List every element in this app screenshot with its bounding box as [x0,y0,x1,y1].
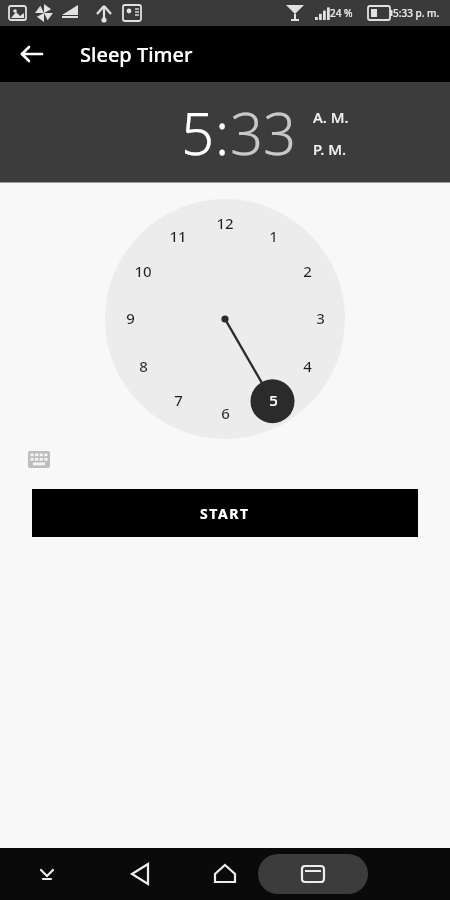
button[interactable]: Switch to text input [22,445,58,475]
staticText: START [200,504,250,523]
staticText: 1 [269,226,278,246]
button[interactable]: 1 [258,226,288,246]
button[interactable]: Back [117,850,165,898]
button[interactable]: 7 [163,390,193,410]
staticText: 8 [139,356,148,376]
button[interactable]: Home [201,850,249,898]
staticText: 24 % [330,6,353,20]
staticText: 33 [230,93,297,172]
button[interactable]: 33 [230,93,297,172]
staticText: Sleep Timer [80,41,193,68]
staticText: 2 [303,261,312,281]
staticText: 7 [174,390,183,410]
staticText: 6 [221,403,230,423]
button[interactable]: 5 [181,93,215,172]
button[interactable]: 3 [305,308,335,328]
button[interactable]: 6 [210,403,240,423]
staticText: A. M. [313,107,349,127]
button[interactable]: 4 [292,356,322,376]
staticText: 12 [216,213,234,233]
staticText: 4 [303,356,312,376]
button[interactable]: START [32,489,418,537]
staticText: P. M. [313,139,347,159]
staticText: 5 [181,93,215,172]
button[interactable]: P. M. [313,137,347,161]
staticText: 10 [134,261,152,281]
button[interactable]: Recents [258,854,368,894]
staticText: 11 [169,226,187,246]
button[interactable]: 8 [128,356,158,376]
button[interactable]: 2 [292,261,322,281]
staticText: : [215,93,230,172]
button[interactable]: 10 [128,261,158,281]
staticText: 5 [269,390,278,410]
button[interactable]: 11 [163,226,193,246]
staticText: 3 [316,308,325,328]
button[interactable]: 5 [258,390,288,410]
button[interactable]: 12 [210,213,240,233]
staticText: 9 [126,308,135,328]
button[interactable]: 9 [115,308,145,328]
button[interactable]: Hide keyboard [25,852,69,896]
staticText: 5:33 p. m. [393,6,440,20]
button[interactable]: A. M. [313,105,349,129]
button[interactable]: Back [10,32,54,76]
